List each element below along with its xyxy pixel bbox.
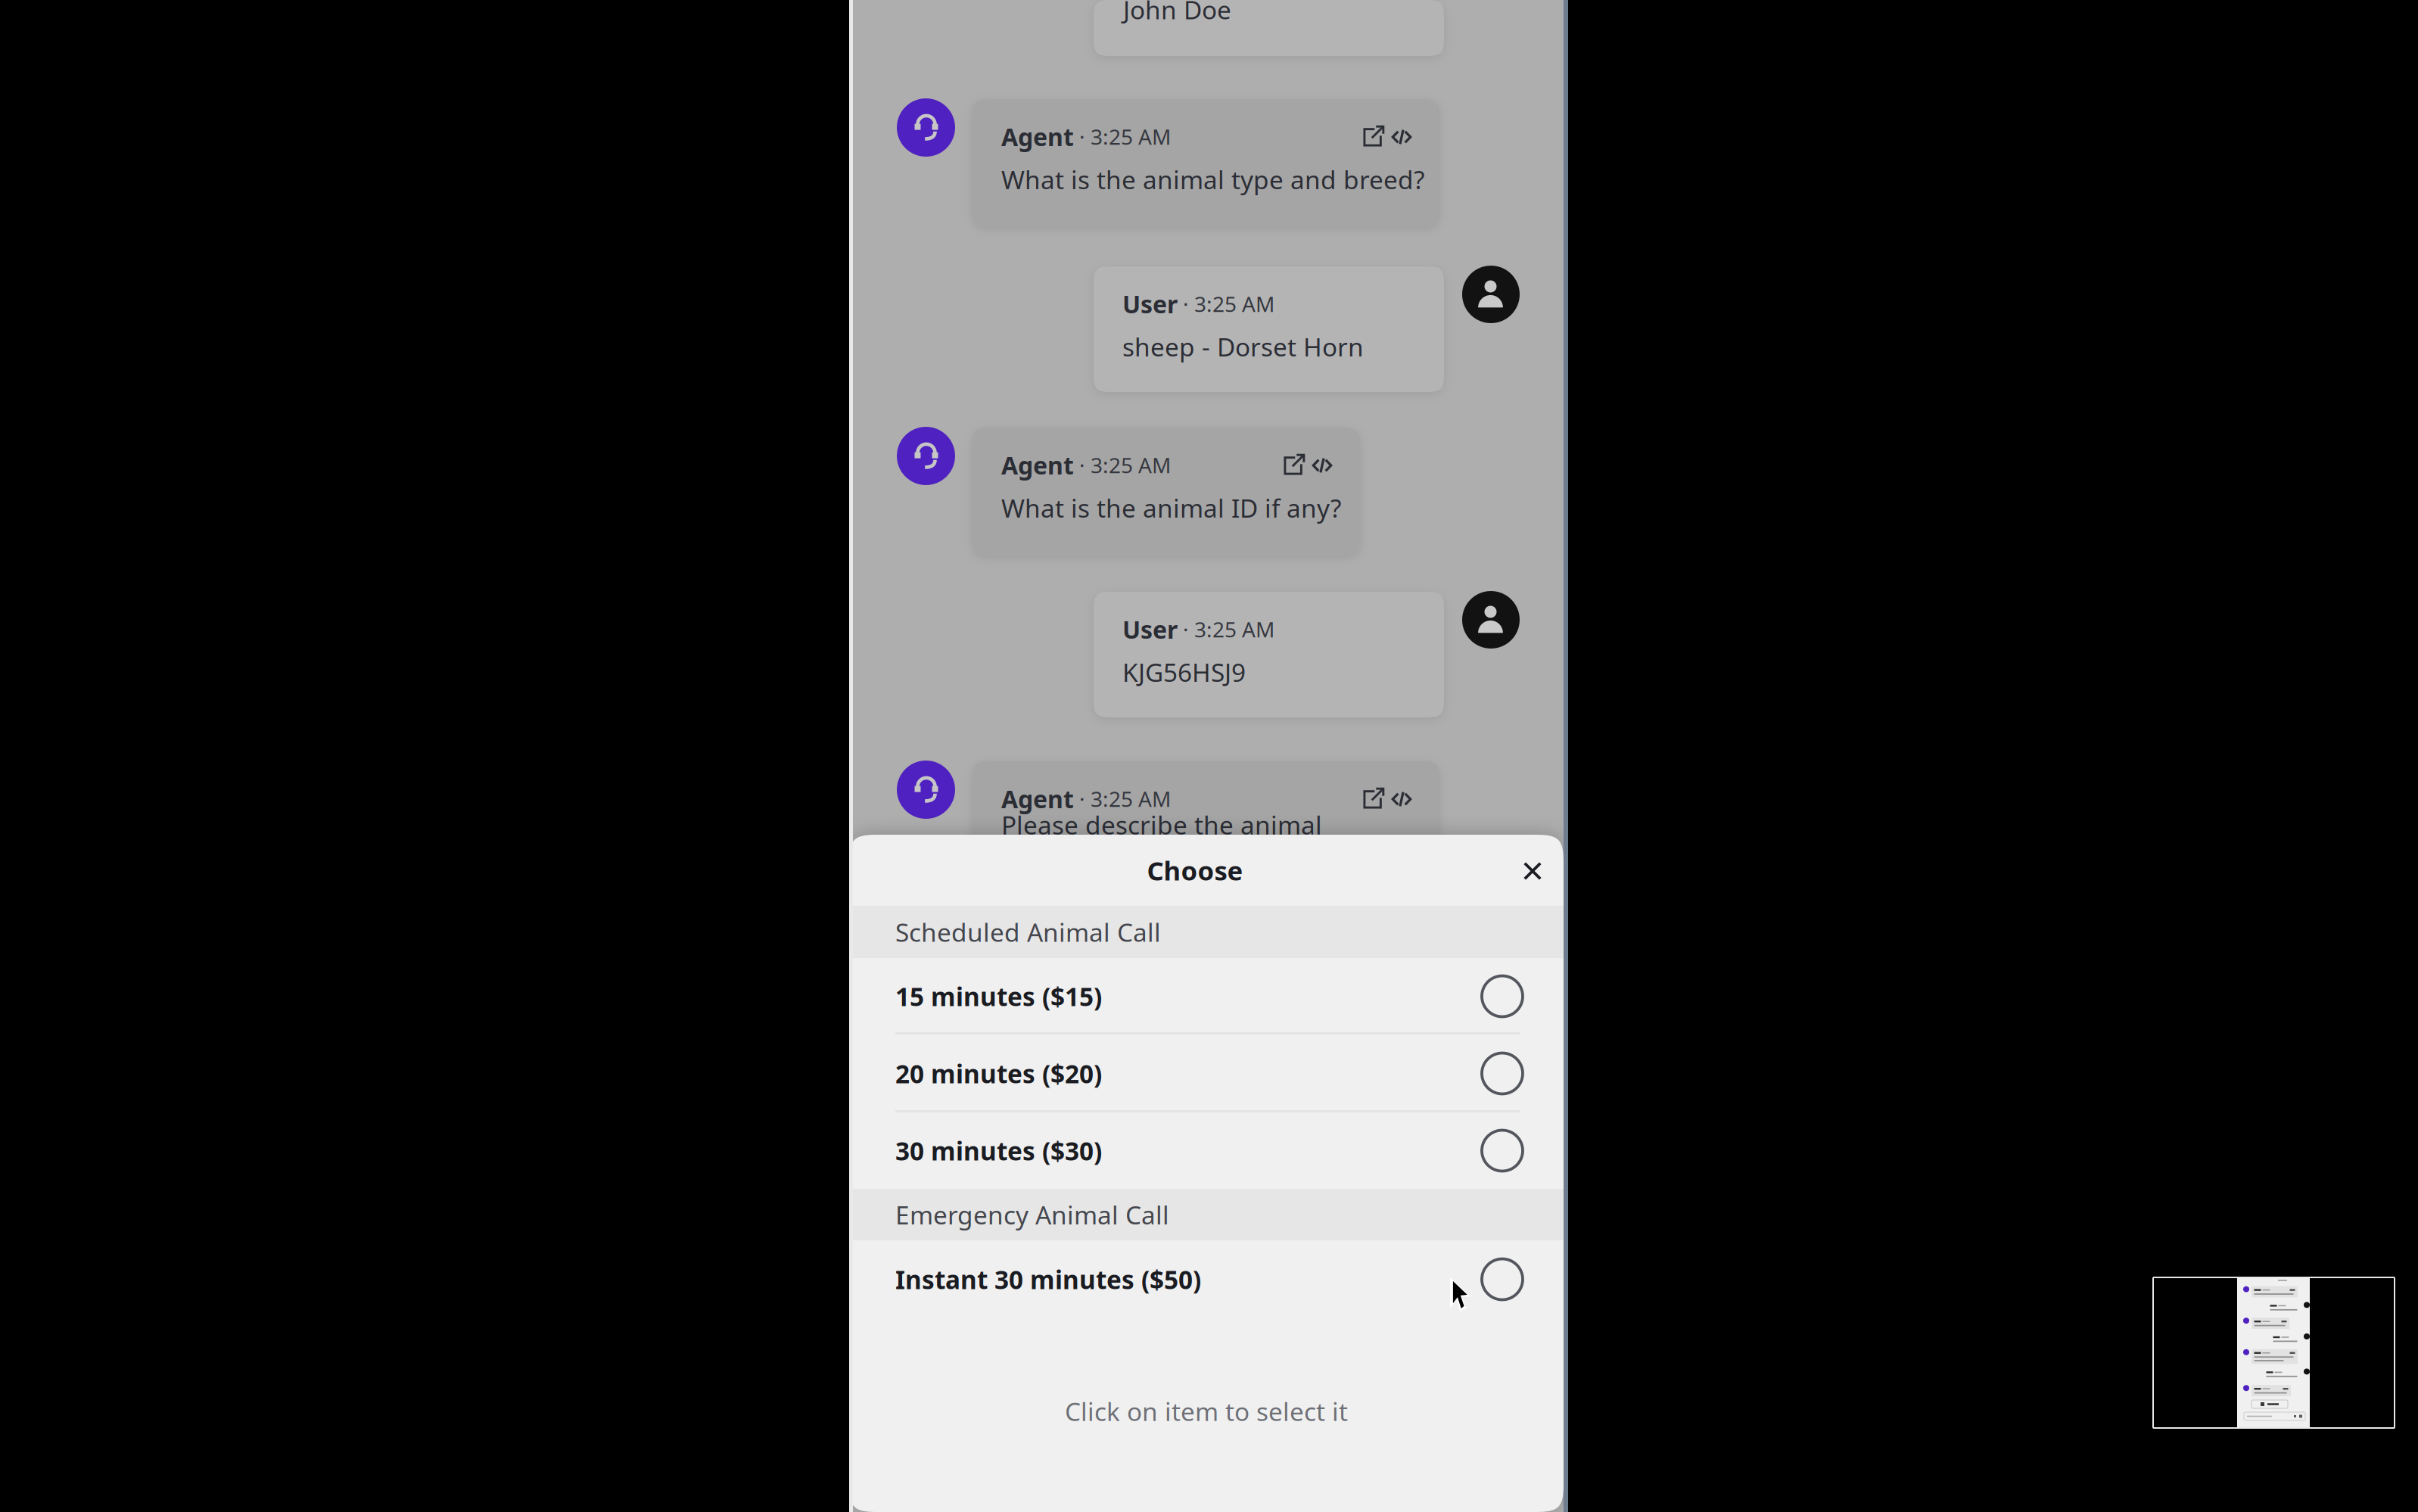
staticText: sheep - Dorset Horn [1122,330,1364,363]
staticText: Agent [1001,783,1074,815]
staticText: · [1074,123,1091,151]
staticText: Choose [1147,853,1243,888]
button[interactable]: Open in new window [1283,454,1305,476]
staticText: 3:25 AM [1091,785,1171,813]
staticText: 3:25 AM [1091,451,1171,479]
staticText: Please describe the animal symptoms if a… [1001,808,1322,875]
staticText: 3:25 AM [1194,615,1274,643]
staticText: Emergency Animal Call [895,1198,1169,1231]
staticText: 20 minutes ($20) [895,1057,1102,1090]
button[interactable]: 20 minutes ($20) [849,1034,1564,1112]
button[interactable]: Open in new window [1362,788,1384,810]
staticText: · [1074,785,1091,813]
button[interactable]: Instant 30 minutes ($50) [849,1240,1564,1318]
staticText: · [1178,290,1194,318]
staticText: 3:25 AM [1091,123,1171,151]
staticText: Instant 30 minutes ($50) [895,1263,1201,1296]
button[interactable]: View source [1305,455,1332,475]
button[interactable]: Close [1509,848,1556,894]
staticText: What is the animal ID if any? [1001,491,1341,525]
staticText: KJG56HSJ9 [1122,655,1246,689]
staticText: 30 minutes ($30) [895,1134,1102,1167]
staticText: 3:25 AM [1194,290,1274,318]
staticText: 15 minutes ($15) [895,980,1102,1013]
button[interactable]: Open in new window [1362,126,1384,148]
staticText: · [1178,615,1194,643]
staticText: John Doe [1123,0,1231,26]
button[interactable]: View source [1384,127,1411,146]
button[interactable]: View source [1384,789,1411,809]
staticText: What is the animal type and breed? [1001,163,1424,196]
staticText: User [1122,288,1178,320]
button[interactable]: 30 minutes ($30) [849,1112,1564,1189]
staticText: Scheduled Animal Call [895,915,1161,949]
staticText: Agent [1001,121,1074,153]
staticText: User [1122,613,1178,645]
staticText: Agent [1001,449,1074,481]
staticText: · [1074,451,1091,479]
staticText: Click on item to select it [1065,1394,1348,1428]
button[interactable]: 15 minutes ($15) [849,958,1564,1034]
